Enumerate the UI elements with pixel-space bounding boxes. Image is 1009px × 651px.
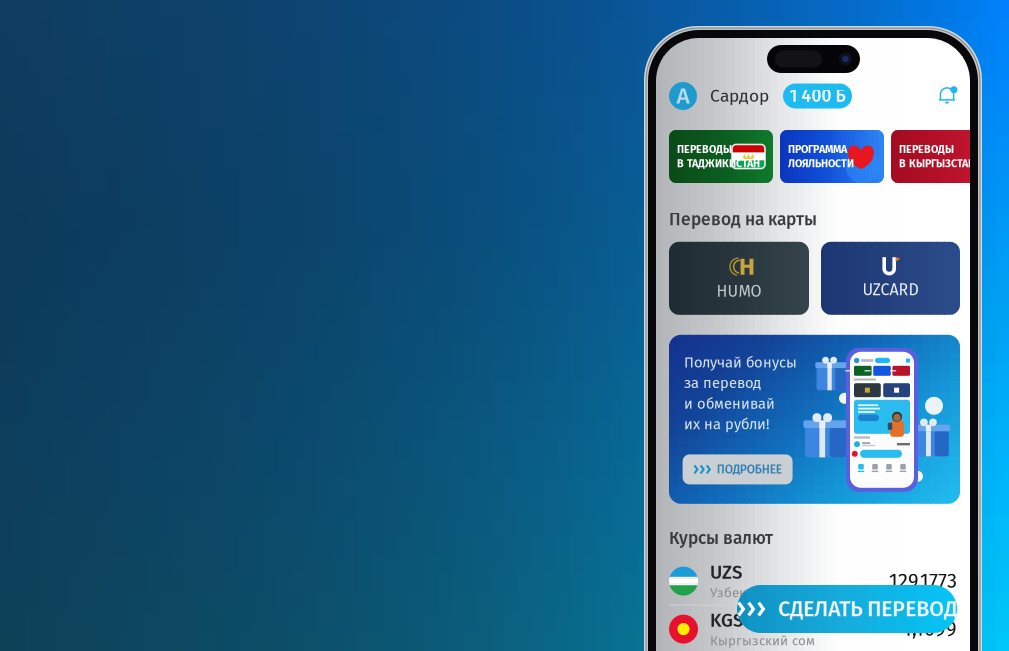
button[interactable]: H xyxy=(669,242,809,315)
button[interactable]: Получай бонусы xyxy=(669,335,960,504)
staticText: Узбекский сум xyxy=(710,585,801,601)
staticText: H xyxy=(739,252,755,281)
staticText: KGS xyxy=(710,609,743,632)
button[interactable]: ПРОГРАММА xyxy=(780,130,884,183)
staticText: UZCARD xyxy=(862,280,918,299)
staticText: ЛОЯЛЬНОСТИ xyxy=(788,157,854,170)
staticText: Перевод на карты xyxy=(669,209,817,230)
staticText: 129,1773 xyxy=(889,569,957,593)
staticText: В КЫРГЫЗСТАН xyxy=(899,157,975,170)
button[interactable]: Profile xyxy=(669,82,697,110)
button[interactable]: СДЕЛАТЬ ПЕРЕВОД xyxy=(737,585,957,633)
staticText: UZS xyxy=(710,561,742,584)
staticText: A xyxy=(676,82,689,110)
staticText: и обменивай xyxy=(684,395,775,413)
staticText: их на рубли! xyxy=(684,416,770,433)
button[interactable]: 1 400 Б xyxy=(783,83,852,108)
staticText: за перевод xyxy=(684,374,761,392)
staticText: ПОДРОБНЕЕ xyxy=(717,462,782,477)
staticText: ПРОГРАММА xyxy=(788,143,847,156)
staticText: ПЕРЕВОДЫ xyxy=(899,143,954,156)
button[interactable]: KGS xyxy=(669,614,957,645)
staticText: ПЕРЕВОДЫ xyxy=(677,143,732,156)
staticText: СДЕЛАТЬ ПЕРЕВОД xyxy=(778,596,957,622)
staticText: Сардор xyxy=(710,86,769,106)
staticText: Курсы валют xyxy=(669,528,773,549)
staticText: Кыргызский сом xyxy=(710,633,815,649)
staticText: HUMO xyxy=(716,282,761,301)
button[interactable]: ПЕРЕВОДЫ xyxy=(669,130,773,183)
button[interactable]: Notifications xyxy=(938,86,957,106)
staticText: В ТАДЖИКИСТАН xyxy=(677,157,760,170)
button[interactable]: UZS xyxy=(669,566,957,597)
button[interactable]: UZCARD xyxy=(821,242,960,315)
staticText: 1 400 Б xyxy=(789,86,845,106)
button[interactable]: ПЕРЕВОДЫ xyxy=(891,130,995,183)
staticText: 1,1099 xyxy=(903,617,957,641)
staticText: Получай бонусы xyxy=(684,354,797,371)
